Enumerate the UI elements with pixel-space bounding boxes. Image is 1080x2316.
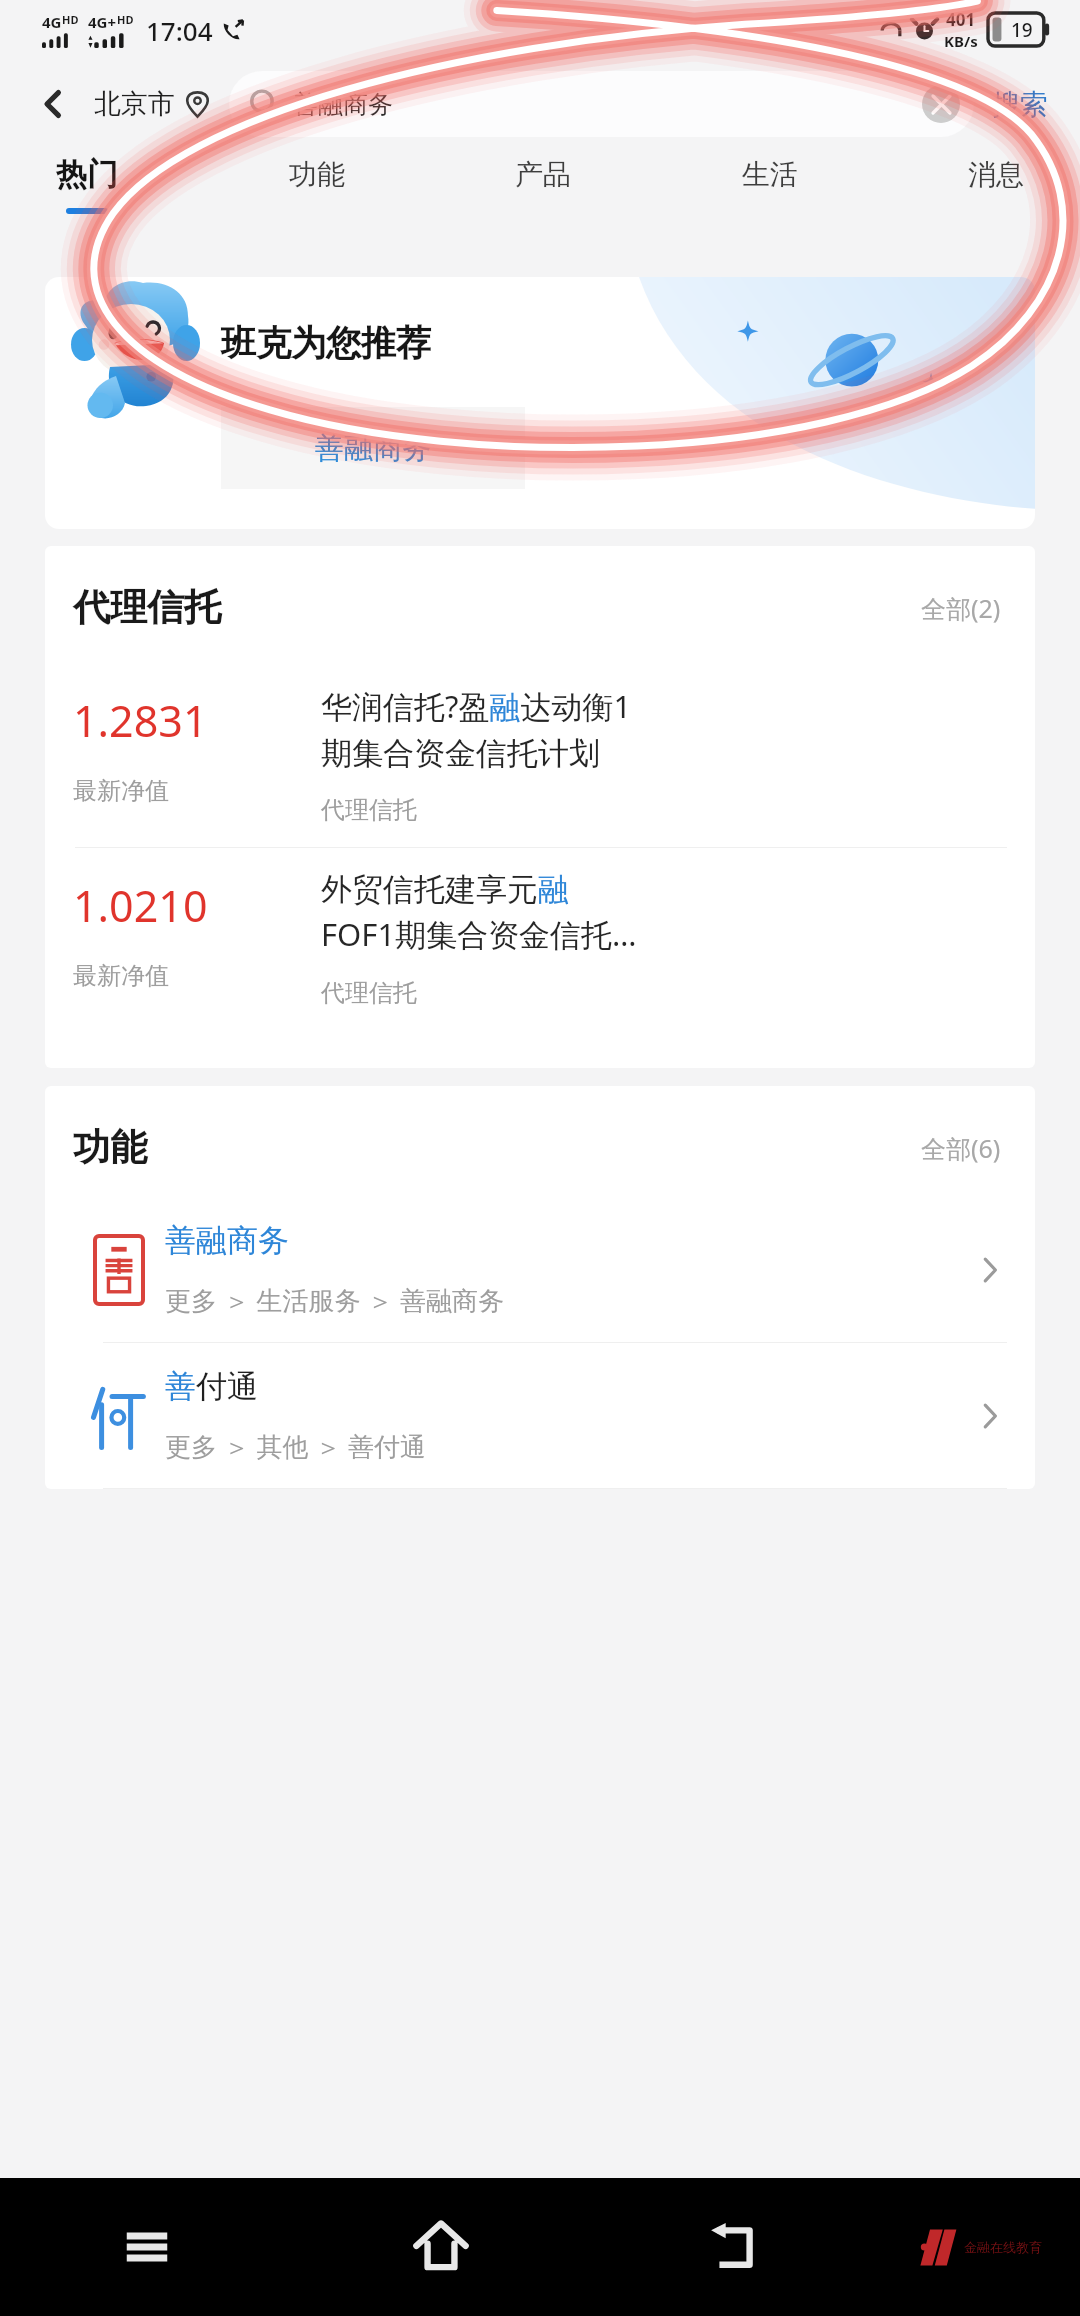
other: Open [973,1399,1007,1433]
button[interactable]: 善融商务 [73,1197,1007,1342]
button[interactable]: 搜索 [986,79,1054,130]
staticText: 华润信托?盈融达动衡1 期集合资金信托计划 [321,685,632,773]
staticText: 4G+ [88,12,117,32]
button[interactable]: 功能 [279,151,355,218]
staticText: 善融商务 [315,430,431,467]
button[interactable]: 善付通 [73,1343,1007,1488]
button[interactable]: 善融商务 [221,407,525,489]
staticText: HD [62,12,79,27]
staticText: 全部(6) [921,1131,1001,1165]
button[interactable]: Back [26,77,80,131]
staticText: 全部(2) [921,591,1001,625]
staticText: 产品 [515,157,571,192]
button[interactable]: 产品 [505,151,581,218]
staticText: 功能 [73,1124,147,1171]
staticText: 1.2831 [73,691,208,750]
button[interactable]: 热门 [46,149,128,220]
staticText: 善融商务 [165,1221,289,1260]
other: Alarm [912,17,937,42]
button[interactable]: 生活 [732,151,808,218]
button[interactable]: 1.2831 [73,663,1007,847]
staticText: 更多 ＞ 其他 ＞ 善付通 [165,1428,427,1464]
button[interactable]: 全部(2) [915,585,1007,631]
staticText: 代理信托 [321,978,417,1008]
button[interactable]: 善融商务 [229,71,974,137]
button[interactable]: Recents [0,2178,294,2316]
staticText: 最新净值 [73,776,169,806]
button[interactable]: 北京市 [90,81,215,127]
staticText: 代理信托 [73,584,221,631]
staticText: 19 [1011,17,1033,43]
button[interactable]: 全部(6) [915,1125,1007,1171]
staticText: 班克为您推荐 [221,321,431,365]
staticText: 金融在线教育 [964,2239,1042,2255]
staticText: 善付通 [165,1367,258,1406]
staticText: 17:04 [146,13,213,48]
staticText: 善融商务 [293,89,922,120]
other: Open [973,1253,1007,1287]
button[interactable]: Back [587,2178,880,2316]
staticText: 401 [946,8,976,31]
staticText: 更多 ＞ 生活服务 ＞ 善融商务 [165,1282,505,1318]
other: Headset [878,17,904,43]
staticText: KB/s [944,31,978,51]
staticText: 最新净值 [73,961,169,991]
button[interactable]: 1.0210 [73,848,1007,1030]
staticText: HD [117,12,134,27]
staticText: 4G [42,12,62,32]
staticText: 消息 [968,157,1024,192]
staticText: 1.0210 [73,876,208,935]
staticText: 北京市 [94,87,175,121]
button[interactable]: Home [294,2178,587,2316]
button[interactable]: 班克为您推荐 [45,277,1035,529]
staticText: 功能 [289,157,345,192]
staticText: 生活 [742,157,798,192]
staticText: 搜索 [992,87,1048,122]
staticText: 热门 [56,155,118,194]
staticText: 代理信托 [321,795,417,825]
button[interactable]: Clear [922,85,960,123]
staticText: 外贸信托建享元融 FOF1期集合资金信托… [321,870,637,956]
button[interactable]: 消息 [958,151,1034,218]
